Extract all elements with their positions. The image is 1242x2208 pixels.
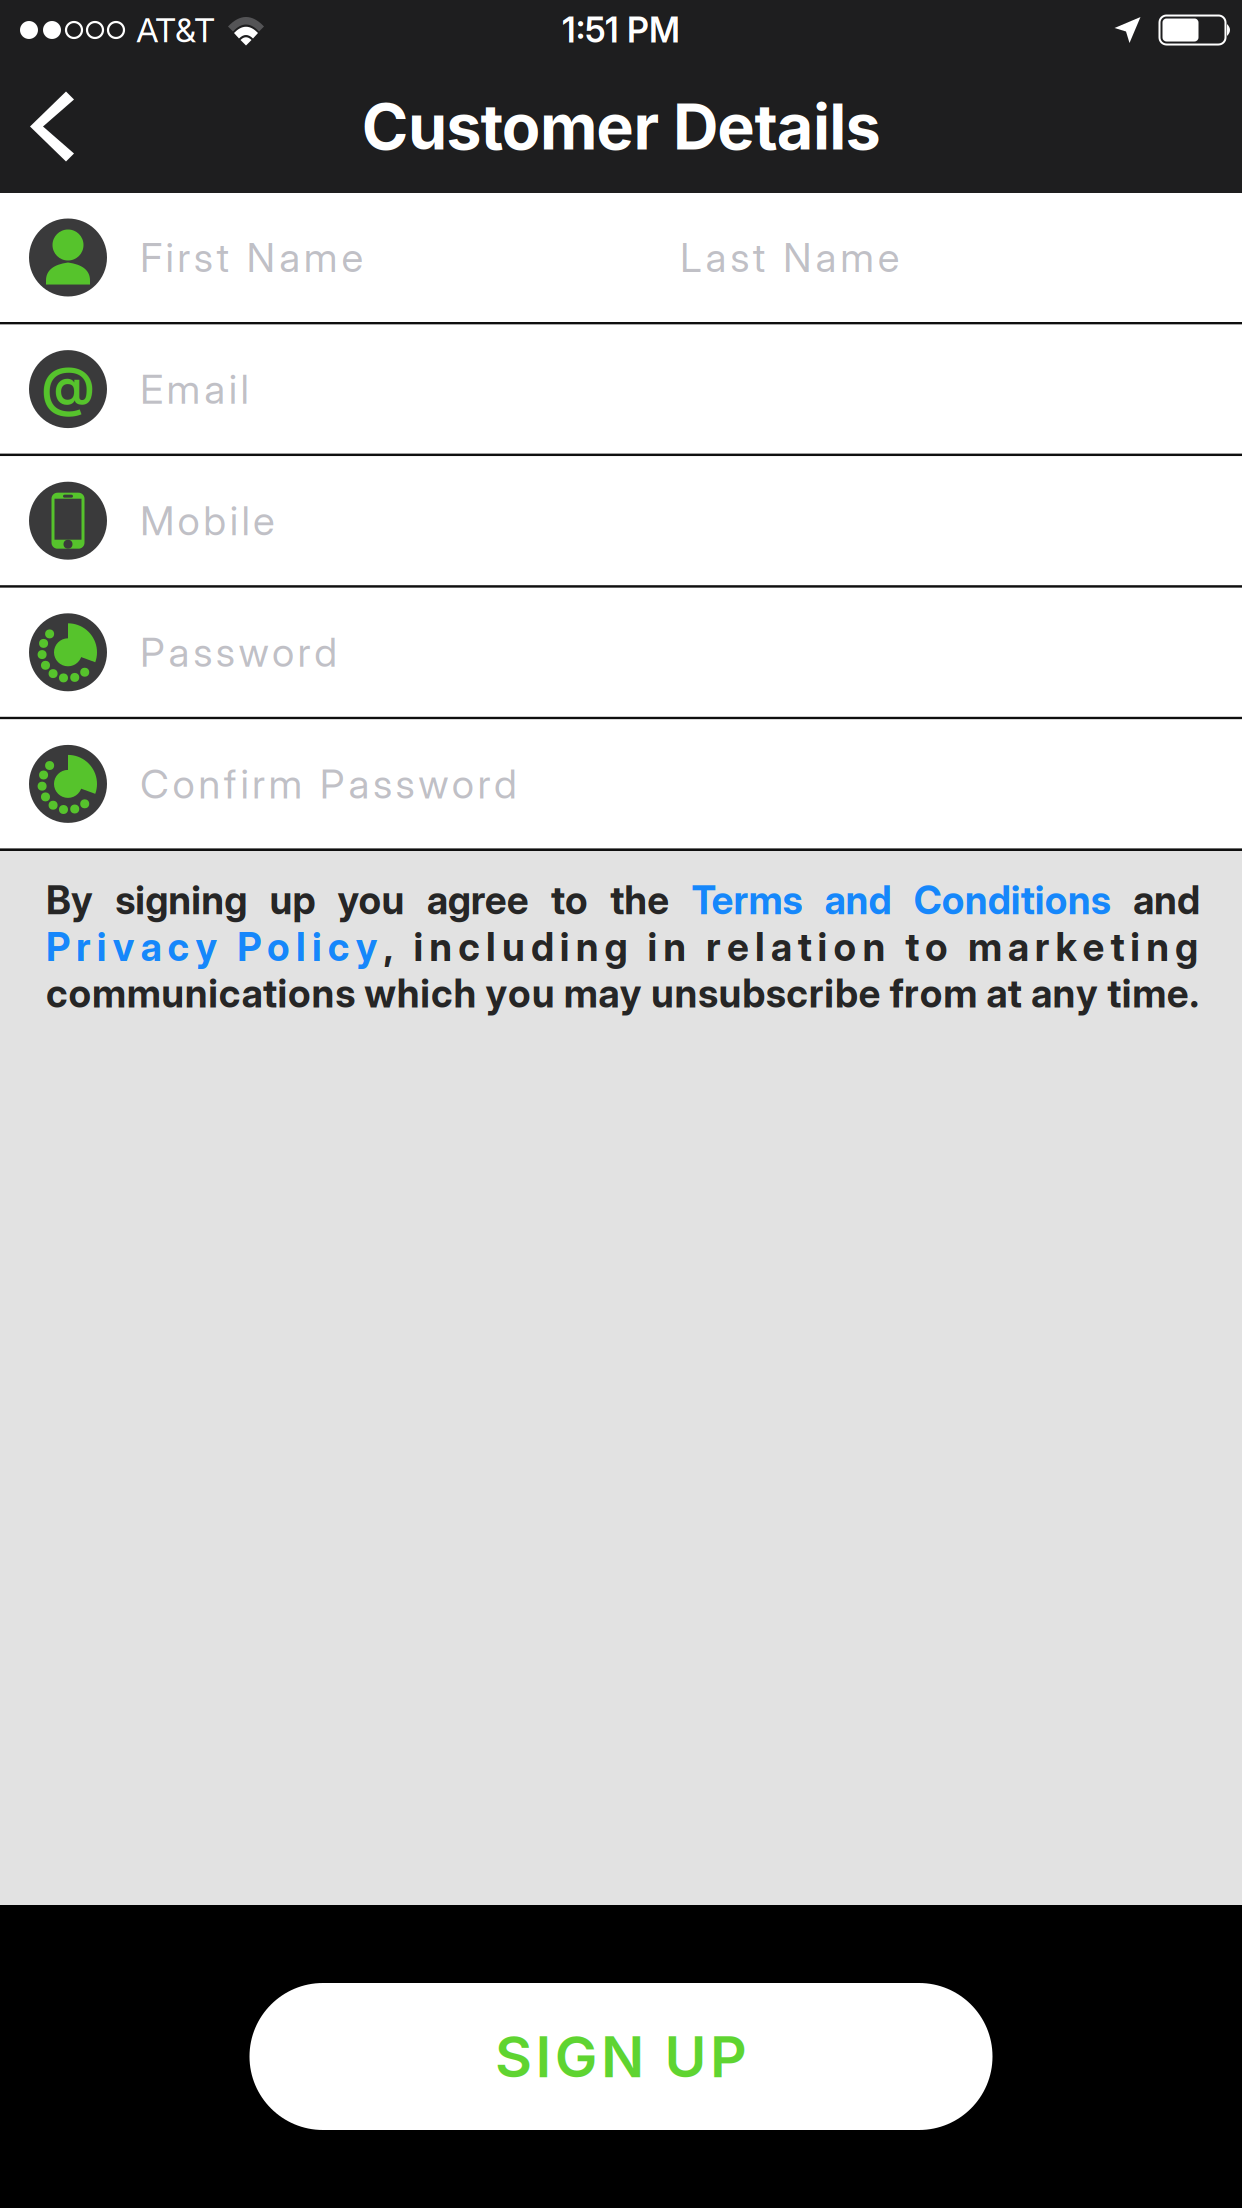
staticText: i (312, 924, 322, 970)
staticText: a (241, 970, 262, 1017)
staticText: n (1052, 970, 1075, 1017)
staticText: d (494, 760, 517, 808)
staticText: m (564, 970, 598, 1017)
staticText: up (269, 877, 315, 924)
staticText: a (771, 924, 792, 970)
staticText: f (224, 760, 237, 808)
staticText: N (247, 233, 276, 282)
button[interactable]: P (0, 588, 1242, 719)
staticText: and (1133, 877, 1200, 924)
staticText: n (1146, 924, 1169, 970)
staticText: n (576, 924, 599, 970)
staticText: Conditions (914, 877, 1111, 924)
staticText: Terms (691, 877, 802, 924)
staticText: l (241, 496, 249, 545)
staticText: u (532, 970, 555, 1017)
staticText: k (1056, 924, 1077, 970)
button[interactable]: M (0, 456, 1242, 588)
staticText: h (453, 970, 476, 1017)
staticText: r (298, 628, 311, 676)
staticText: o (925, 924, 948, 970)
staticText: t (905, 924, 919, 970)
staticText: s (216, 628, 235, 676)
staticText: o (833, 924, 856, 970)
staticText: to (551, 877, 588, 924)
staticText: . (1189, 970, 1199, 1017)
staticText: y (620, 970, 642, 1017)
staticText: g (605, 924, 628, 970)
staticText: c (219, 970, 241, 1017)
staticText: t (1008, 970, 1022, 1017)
staticText: o (508, 970, 531, 1017)
staticText: o (288, 970, 311, 1017)
staticText: r (809, 970, 824, 1017)
staticText: m (304, 233, 338, 282)
staticText: r (706, 924, 721, 970)
staticText: u (719, 970, 742, 1017)
staticText: i (1122, 970, 1132, 1017)
staticText: a (706, 233, 727, 282)
staticText: y (486, 970, 508, 1017)
staticText: c (786, 970, 808, 1017)
staticText: u (651, 970, 674, 1017)
staticText: n (663, 924, 686, 970)
staticText: C (140, 760, 169, 808)
staticText: i (818, 924, 828, 970)
staticText: e (1167, 970, 1189, 1017)
staticText: m (1132, 970, 1166, 1017)
staticText: m (840, 233, 874, 282)
staticText: P (46, 924, 70, 970)
staticText: 1:51 PM (562, 9, 680, 51)
staticText: s (193, 628, 212, 676)
staticText: P (140, 628, 165, 676)
staticText: a (598, 970, 619, 1017)
staticText: n (185, 970, 208, 1017)
staticText: c (167, 924, 189, 970)
staticText: m (269, 760, 303, 808)
button[interactable]: Back (0, 71, 74, 181)
staticText: N (601, 2022, 644, 2091)
staticText: i (647, 924, 657, 970)
staticText: By (46, 877, 93, 924)
staticText: i (229, 365, 237, 413)
staticText: r (252, 760, 265, 808)
staticText: agree (427, 877, 529, 924)
staticText: l (486, 924, 496, 970)
staticText: I (535, 2022, 551, 2091)
staticText: i (240, 760, 248, 808)
button[interactable]: F (0, 193, 1242, 325)
staticText: o (267, 924, 290, 970)
staticText: m (968, 924, 1002, 970)
button[interactable]: S (249, 1983, 992, 2130)
staticText: w (238, 628, 268, 676)
staticText: c (46, 970, 68, 1017)
staticText: d (314, 628, 337, 676)
staticText: s (698, 970, 718, 1017)
staticText: n (862, 924, 885, 970)
staticText: l (755, 924, 765, 970)
staticText: t (263, 970, 277, 1017)
staticText: b (742, 970, 765, 1017)
staticText: a (141, 924, 162, 970)
staticText: r (1035, 924, 1050, 970)
button[interactable]: C (0, 719, 1242, 851)
staticText: n (198, 760, 220, 808)
button[interactable]: @ (0, 325, 1242, 456)
staticText: i (208, 970, 218, 1017)
staticText: a (986, 970, 1007, 1017)
staticText: i (824, 970, 834, 1017)
staticText: i (97, 924, 107, 970)
staticText: c (458, 924, 480, 970)
staticText: v (113, 924, 135, 970)
staticText: b (835, 970, 858, 1017)
